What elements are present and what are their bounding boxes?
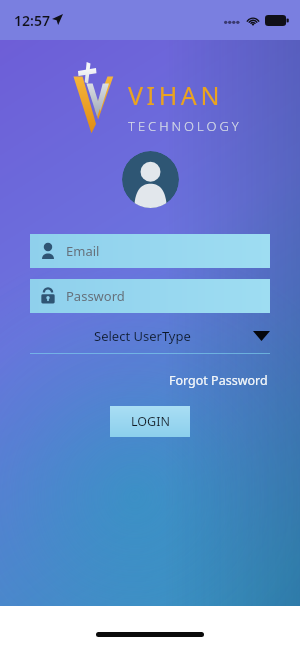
staticText: TECHNOLOGY (128, 117, 242, 135)
staticText: 12:57 (14, 11, 50, 30)
button[interactable]: LOGIN (110, 406, 190, 437)
staticText: Select UserType (94, 327, 191, 345)
button[interactable]: Forgot Password (167, 370, 270, 391)
staticText: Email (66, 242, 100, 260)
staticText: VIHAN (128, 78, 223, 112)
staticText: Password (66, 287, 125, 305)
button[interactable]: Password (30, 279, 270, 313)
button[interactable]: Select UserType (30, 322, 270, 354)
button[interactable]: Email (30, 234, 270, 268)
staticText: LOGIN (131, 413, 170, 430)
